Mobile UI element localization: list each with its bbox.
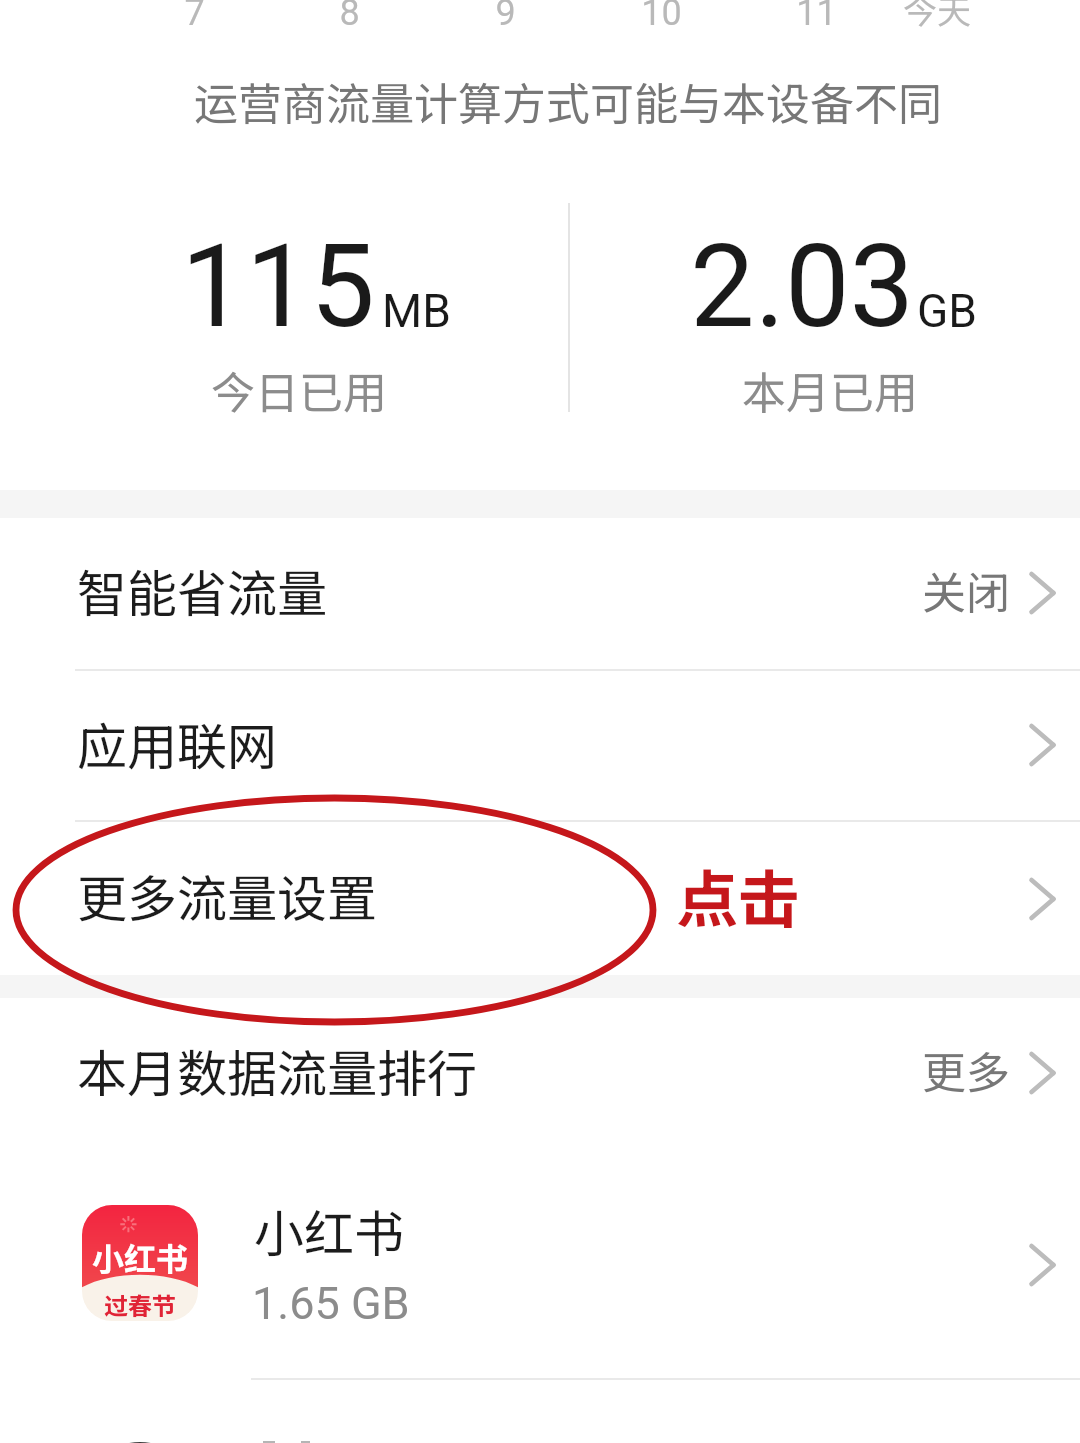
staticText: 运营商流量计算方式可能与本设备不同 — [194, 69, 942, 133]
button[interactable]: 本月数据流量排行 — [0, 998, 1080, 1148]
button[interactable]: 智能省流量 — [0, 518, 1080, 668]
staticText: 小红书 — [92, 1234, 189, 1280]
staticText: MB — [382, 284, 451, 338]
staticText: 关闭 — [922, 558, 1010, 622]
staticText: 本月已用 — [742, 358, 918, 422]
other: Open — [1028, 722, 1054, 768]
staticText: 本月数据流量排行 — [77, 1034, 477, 1106]
staticText: 更多流量设置 — [77, 859, 377, 931]
other: Open — [1028, 876, 1054, 922]
staticText: 115 — [181, 219, 375, 354]
staticText: 点击 — [676, 850, 801, 940]
button[interactable]: 应用联网 — [0, 670, 1080, 820]
staticText: 9 — [495, 0, 516, 34]
staticText: 1.65 GB — [252, 1277, 410, 1330]
staticText: GB — [917, 284, 977, 338]
button[interactable]: 小红书 — [0, 1148, 1080, 1378]
staticText: 2.03 — [690, 219, 915, 354]
button[interactable]: 更多流量设置 — [0, 822, 1080, 975]
staticText: 小红书 — [254, 1194, 404, 1266]
staticText: 8 — [339, 0, 360, 34]
staticText: 过春节 — [104, 1287, 176, 1321]
staticText: 应用联网 — [77, 707, 277, 779]
staticText: 今天 — [903, 0, 971, 34]
staticText: 智能省流量 — [77, 554, 327, 626]
staticText: 10 — [641, 0, 682, 34]
other: Open — [1028, 1050, 1054, 1096]
other: Open app details — [1028, 1242, 1054, 1288]
other: Open — [1028, 570, 1054, 616]
staticText: 11 — [796, 0, 837, 34]
staticText: 今日已用 — [211, 358, 387, 422]
staticText: 更多 — [922, 1038, 1010, 1102]
staticText: 7 — [184, 0, 205, 34]
